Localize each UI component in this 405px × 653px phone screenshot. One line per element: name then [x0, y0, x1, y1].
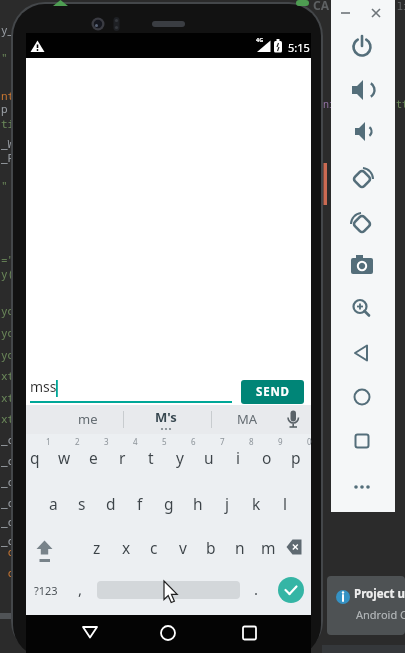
- staticText: 1: [46, 436, 51, 447]
- button[interactable]: [232, 619, 260, 647]
- staticText: c: [1, 544, 15, 559]
- button[interactable]: [345, 337, 381, 369]
- staticText: q: [30, 447, 40, 468]
- staticText: me: [78, 410, 98, 428]
- staticText: y(: [1, 266, 15, 281]
- staticText: yo: [1, 325, 15, 340]
- staticText: y: [176, 447, 184, 468]
- staticText: xt: [1, 368, 15, 383]
- staticText: d: [106, 493, 116, 514]
- staticText: _F: [1, 150, 15, 165]
- staticText: mss: [30, 377, 57, 396]
- staticText: s: [78, 493, 86, 514]
- button[interactable]: [345, 162, 381, 194]
- button[interactable]: [26, 405, 311, 434]
- button[interactable]: [345, 74, 381, 106]
- staticText: e: [89, 447, 98, 468]
- staticText: CA: [313, 0, 330, 13]
- staticText: _c: [1, 453, 15, 468]
- staticText: xt: [1, 390, 15, 405]
- staticText: t: [148, 447, 154, 468]
- staticText: 4G: [256, 36, 264, 43]
- staticText: j: [225, 493, 229, 514]
- button[interactable]: [345, 381, 381, 413]
- staticText: _c: [1, 432, 15, 447]
- staticText: _c: [1, 514, 15, 529]
- button[interactable]: [154, 619, 182, 647]
- staticText: z: [93, 537, 101, 558]
- staticText: yo: [1, 347, 15, 362]
- staticText: _c: [1, 533, 15, 548]
- staticText: _c: [1, 495, 15, 510]
- staticText: 7: [220, 436, 225, 447]
- staticText: ti: [1, 116, 15, 131]
- staticText: 5: [162, 436, 167, 447]
- staticText: 0: [307, 436, 312, 447]
- staticText: o: [262, 447, 272, 468]
- staticText: v: [179, 537, 187, 558]
- button[interactable]: [97, 581, 240, 599]
- staticText: r: [119, 447, 126, 468]
- staticText: p: [1, 101, 8, 116]
- staticText: 3: [104, 436, 109, 447]
- staticText: 2: [75, 436, 80, 447]
- staticText: 8: [249, 436, 254, 447]
- staticText: tt: [396, 97, 405, 111]
- button[interactable]: [345, 471, 381, 503]
- staticText: M's: [155, 408, 177, 426]
- staticText: c: [1, 565, 15, 580]
- button[interactable]: [345, 207, 381, 239]
- staticText: c: [150, 537, 158, 558]
- staticText: i: [236, 447, 240, 468]
- staticText: nt: [1, 88, 15, 103]
- staticText: 5:15: [288, 40, 310, 55]
- staticText: n: [235, 537, 245, 558]
- staticText: 6: [191, 436, 196, 447]
- button[interactable]: [345, 293, 381, 325]
- staticText: ": [1, 50, 8, 65]
- staticText: p: [291, 447, 301, 468]
- button[interactable]: [345, 31, 381, 63]
- staticText: f: [137, 493, 143, 514]
- staticText: 4: [133, 436, 138, 447]
- staticText: x: [122, 537, 131, 558]
- staticText: w: [58, 447, 71, 468]
- staticText: y_s: [1, 22, 21, 37]
- staticText: SEND: [256, 384, 290, 400]
- button[interactable]: [345, 250, 381, 282]
- staticText: a: [49, 493, 58, 514]
- staticText: u: [204, 447, 214, 468]
- button[interactable]: [278, 577, 304, 603]
- staticText: k: [252, 493, 261, 514]
- staticText: m: [261, 537, 276, 558]
- staticText: li: [397, 0, 405, 13]
- staticText: yo: [1, 303, 15, 318]
- button[interactable]: [76, 619, 104, 647]
- staticText: Android C: [356, 607, 405, 622]
- staticText: ": [1, 178, 8, 193]
- staticText: ?123: [34, 583, 58, 598]
- staticText: =": [1, 252, 15, 267]
- staticText: 9: [278, 436, 283, 447]
- staticText: _c: [1, 474, 15, 489]
- staticText: _W: [1, 136, 15, 151]
- staticText: Project u: [354, 586, 405, 602]
- button[interactable]: SEND: [241, 380, 304, 404]
- staticText: ,: [78, 579, 83, 599]
- staticText: .: [254, 579, 259, 599]
- button[interactable]: [345, 115, 381, 147]
- staticText: xt: [1, 411, 15, 426]
- staticText: l: [283, 493, 287, 514]
- staticText: ni: [323, 97, 335, 111]
- button[interactable]: [327, 576, 405, 635]
- staticText: MA: [237, 410, 258, 428]
- staticText: h: [193, 493, 203, 514]
- staticText: g: [164, 493, 174, 514]
- staticText: b: [206, 537, 216, 558]
- button[interactable]: [345, 425, 381, 457]
